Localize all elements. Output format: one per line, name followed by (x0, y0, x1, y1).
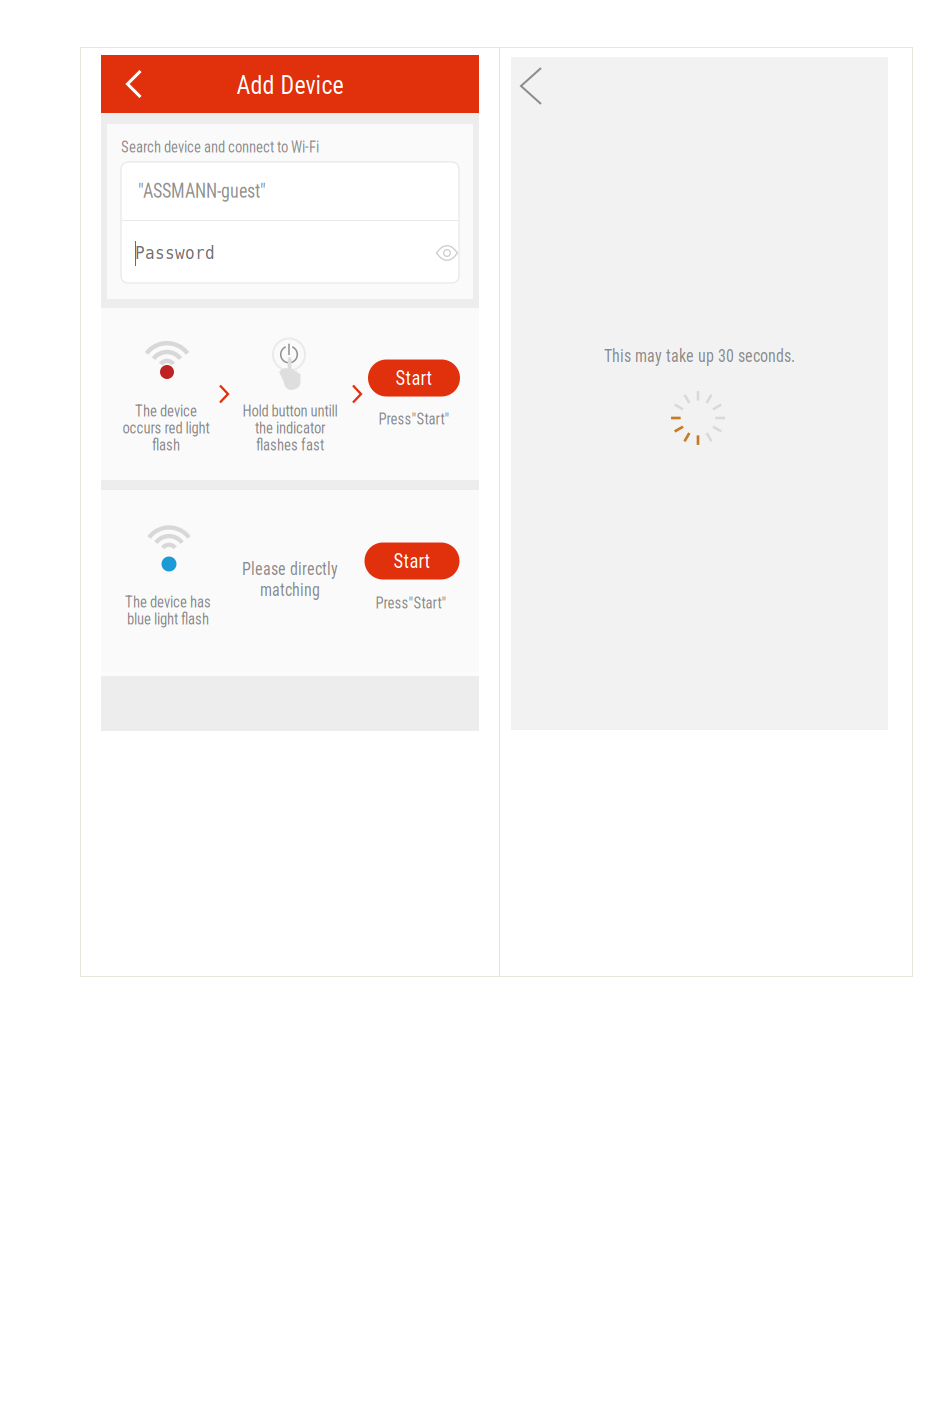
button[interactable]: Back (509, 63, 553, 109)
staticText: flashes fast (256, 436, 324, 454)
staticText: Press"Start" (375, 594, 446, 612)
staticText: blue light flash (127, 610, 209, 628)
staticText: The device (135, 402, 197, 420)
button[interactable]: Start (368, 359, 460, 396)
staticText: The device has (125, 593, 211, 611)
button[interactable]: Show password (430, 238, 464, 268)
staticText: Press"Start" (378, 410, 449, 428)
staticText: flash (152, 436, 180, 454)
staticText: This may take up 30 seconds. (604, 347, 795, 365)
staticText: Search device and connect to Wi-Fi (121, 138, 319, 156)
staticText: "ASSMANN-guest" (138, 180, 266, 202)
button[interactable]: Start (364, 542, 459, 579)
staticText: Start (393, 550, 430, 572)
staticText: Hold button untill (242, 402, 337, 420)
button[interactable]: Back (114, 62, 154, 106)
staticText: Please directly (242, 560, 338, 578)
staticText: occurs red light (122, 419, 209, 437)
staticText: Password (135, 244, 215, 262)
staticText: the indicator (255, 419, 325, 437)
staticText: matching (260, 581, 320, 599)
staticText: Start (395, 367, 432, 389)
staticText: Add Device (236, 71, 343, 99)
